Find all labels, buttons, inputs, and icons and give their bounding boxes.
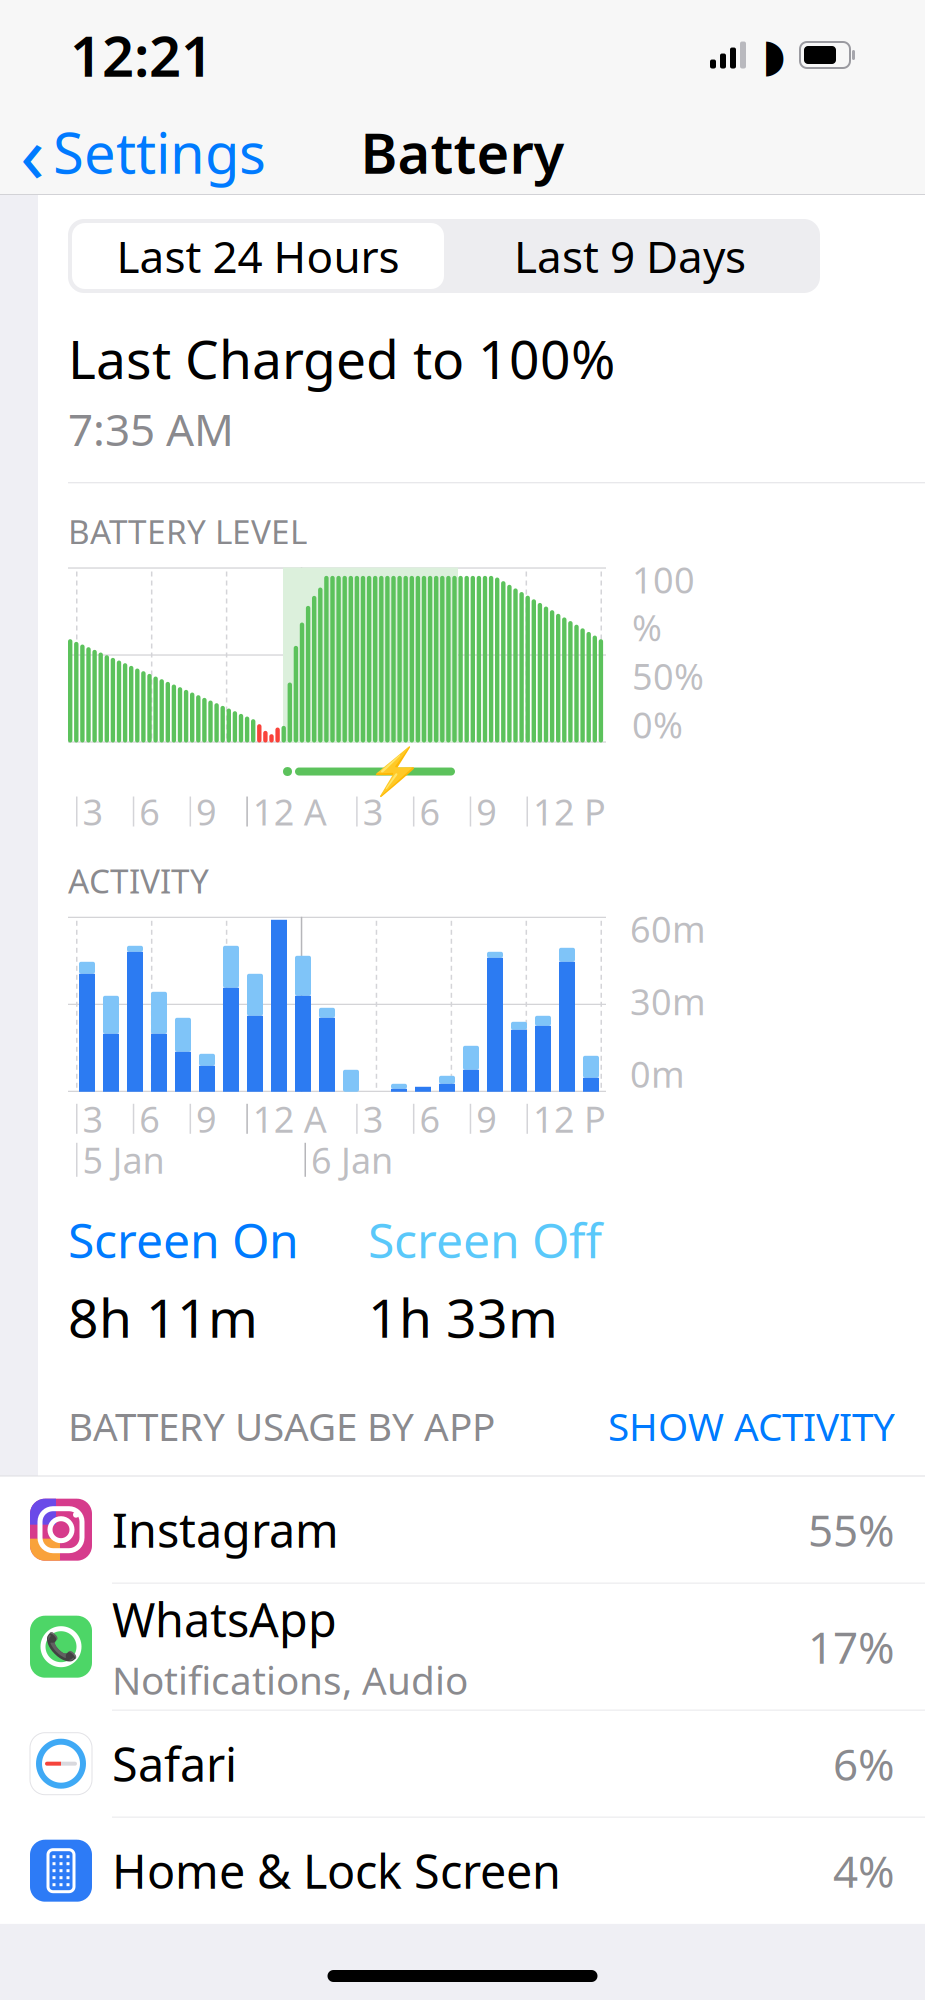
button[interactable]: SHOW ACTIVITY <box>608 1400 895 1452</box>
staticText: 6 <box>419 788 440 835</box>
staticText: 12 A <box>253 788 327 835</box>
staticText: 📞 <box>44 1631 77 1662</box>
staticText: WhatsApp <box>112 1588 337 1650</box>
staticText: 6 <box>139 788 160 835</box>
staticText: Battery <box>360 115 564 189</box>
staticText: ⚡ <box>367 746 423 797</box>
button[interactable]: Home & Lock Screen <box>0 1818 925 1924</box>
staticText: 3 <box>82 788 103 835</box>
staticText: 3 <box>82 1095 103 1143</box>
staticText: 9 <box>476 1095 497 1143</box>
staticText: 0% <box>632 701 683 748</box>
staticText: 0m <box>630 1050 685 1098</box>
staticText: 100% <box>632 555 695 651</box>
staticText: 8h 11m <box>68 1281 258 1352</box>
button[interactable]: ‹ <box>0 89 266 215</box>
staticText: 30m <box>630 977 706 1025</box>
staticText: 4% <box>833 1841 895 1900</box>
button[interactable]: Last 24 Hours <box>72 223 444 289</box>
staticText: 3 <box>363 1095 384 1143</box>
staticText: 6 Jan <box>311 1136 393 1184</box>
staticText: 9 <box>196 1095 217 1143</box>
staticText: Last 24 Hours <box>116 227 399 285</box>
staticText: Screen Off <box>368 1208 602 1271</box>
staticText: 12:21 <box>70 18 213 92</box>
staticText: 12 A <box>253 1095 327 1143</box>
staticText: 6% <box>833 1734 895 1793</box>
staticText: Notifications, Audio <box>112 1654 468 1705</box>
staticText: Instagram <box>112 1499 339 1561</box>
staticText: 3 <box>363 788 384 835</box>
staticText: 5 Jan <box>82 1136 164 1184</box>
staticText: Screen On <box>68 1208 299 1271</box>
staticText: Settings <box>53 115 266 189</box>
staticText: 12 P <box>533 788 606 835</box>
staticText: Home & Lock Screen <box>112 1840 561 1902</box>
staticText: 60m <box>630 905 706 953</box>
staticText: 17% <box>808 1617 895 1676</box>
staticText: BATTERY USAGE BY APP <box>68 1400 495 1452</box>
staticText: 12 P <box>533 1095 606 1143</box>
staticText: 9 <box>196 788 217 835</box>
staticText: Safari <box>112 1733 237 1795</box>
staticText: BATTERY LEVEL <box>68 509 307 554</box>
staticText: ◗ <box>762 29 786 81</box>
button[interactable]: Instagram <box>0 1477 925 1584</box>
staticText: ‹ <box>20 99 45 205</box>
button[interactable]: 📞 <box>0 1584 925 1711</box>
button[interactable]: Last 9 Days <box>444 223 816 289</box>
staticText: Last 9 Days <box>514 227 746 285</box>
staticText: 55% <box>808 1500 895 1559</box>
staticText: 7:35 AM <box>68 400 234 458</box>
staticText: Last Charged to 100% <box>68 323 615 394</box>
staticText: 1h 33m <box>368 1281 558 1352</box>
staticText: 9 <box>476 788 497 835</box>
staticText: SHOW ACTIVITY <box>608 1400 895 1452</box>
staticText: 6 <box>139 1095 160 1143</box>
staticText: 50% <box>632 652 704 700</box>
staticText: 6 <box>419 1095 440 1143</box>
staticText: ACTIVITY <box>68 858 209 903</box>
button[interactable]: Safari <box>0 1711 925 1818</box>
